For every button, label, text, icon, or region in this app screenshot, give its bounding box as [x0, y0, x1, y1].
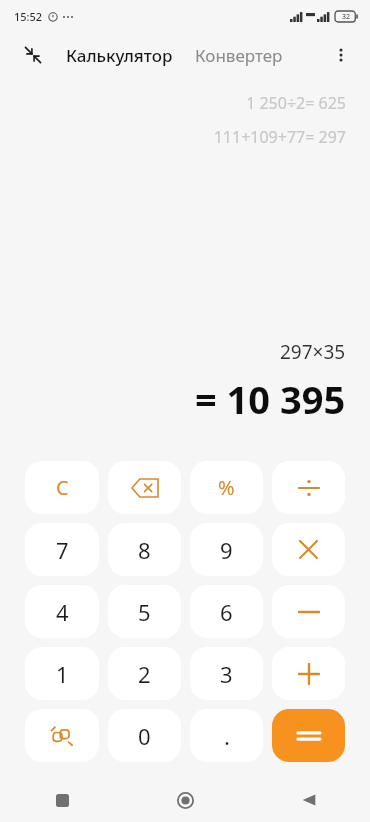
staticText: C: [56, 474, 69, 501]
staticText: 1 250÷2= 625: [246, 92, 346, 114]
button[interactable]: 0: [108, 709, 181, 762]
button[interactable]: 1: [25, 647, 99, 700]
button[interactable]: 7: [25, 523, 99, 576]
button[interactable]: 3: [190, 647, 263, 700]
staticText: .: [224, 721, 230, 751]
staticText: 15:52: [14, 9, 43, 24]
button[interactable]: .: [190, 709, 263, 762]
button[interactable]: 4: [25, 585, 99, 638]
button[interactable]: Recents: [0, 778, 124, 822]
button[interactable]: 2: [108, 647, 181, 700]
staticText: 297×35: [280, 339, 346, 365]
button[interactable]: More options: [326, 40, 356, 70]
staticText: 6: [220, 597, 233, 627]
button[interactable]: Collapse: [18, 40, 48, 70]
staticText: 111+109+77= 297: [213, 126, 346, 148]
button[interactable]: Back: [247, 778, 370, 822]
staticText: 32: [342, 12, 351, 22]
staticText: 9: [220, 535, 233, 565]
staticText: Калькулятор: [66, 44, 173, 67]
button[interactable]: Home: [124, 778, 247, 822]
staticText: 1: [56, 659, 69, 689]
button[interactable]: Minus: [272, 585, 345, 638]
button[interactable]: C: [25, 461, 99, 514]
staticText: %: [218, 474, 235, 501]
button[interactable]: 8: [108, 523, 181, 576]
staticText: = 10 395: [195, 373, 346, 425]
button[interactable]: Equals: [272, 709, 345, 762]
staticText: 0: [138, 721, 151, 751]
button[interactable]: Калькулятор: [66, 44, 173, 67]
button[interactable]: Divide: [272, 461, 345, 514]
button[interactable]: 9: [190, 523, 263, 576]
staticText: Конвертер: [195, 44, 283, 67]
staticText: 8: [138, 535, 151, 565]
button[interactable]: Multiply: [272, 523, 345, 576]
button[interactable]: %: [190, 461, 263, 514]
staticText: 3: [220, 659, 233, 689]
staticText: 7: [56, 535, 69, 565]
button[interactable]: Backspace: [108, 461, 181, 514]
button[interactable]: 6: [190, 585, 263, 638]
button[interactable]: 5: [108, 585, 181, 638]
button[interactable]: Scientific mode: [25, 709, 99, 762]
staticText: 2: [138, 659, 151, 689]
button[interactable]: Конвертер: [195, 44, 283, 67]
staticText: 5: [138, 597, 151, 627]
button[interactable]: Plus: [272, 647, 345, 700]
staticText: 4: [56, 597, 69, 627]
